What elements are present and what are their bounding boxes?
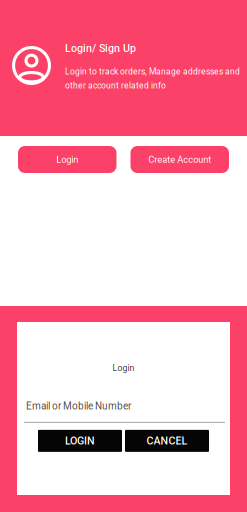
button[interactable]: Login (18, 146, 116, 173)
staticText: CANCEL (146, 435, 187, 447)
staticText: LOGIN (65, 435, 95, 447)
staticText: Login (56, 154, 78, 165)
button[interactable]: CANCEL (125, 430, 209, 452)
button[interactable]: LOGIN (38, 430, 122, 452)
staticText: Login (112, 363, 134, 373)
staticText: Login/ Sign Up (65, 42, 136, 54)
button[interactable]: Create Account (130, 146, 229, 173)
staticText: Email or Mobile Number (26, 400, 131, 412)
staticText: Login to track orders, Manage addresses … (65, 66, 240, 90)
staticText: Create Account (148, 154, 211, 165)
